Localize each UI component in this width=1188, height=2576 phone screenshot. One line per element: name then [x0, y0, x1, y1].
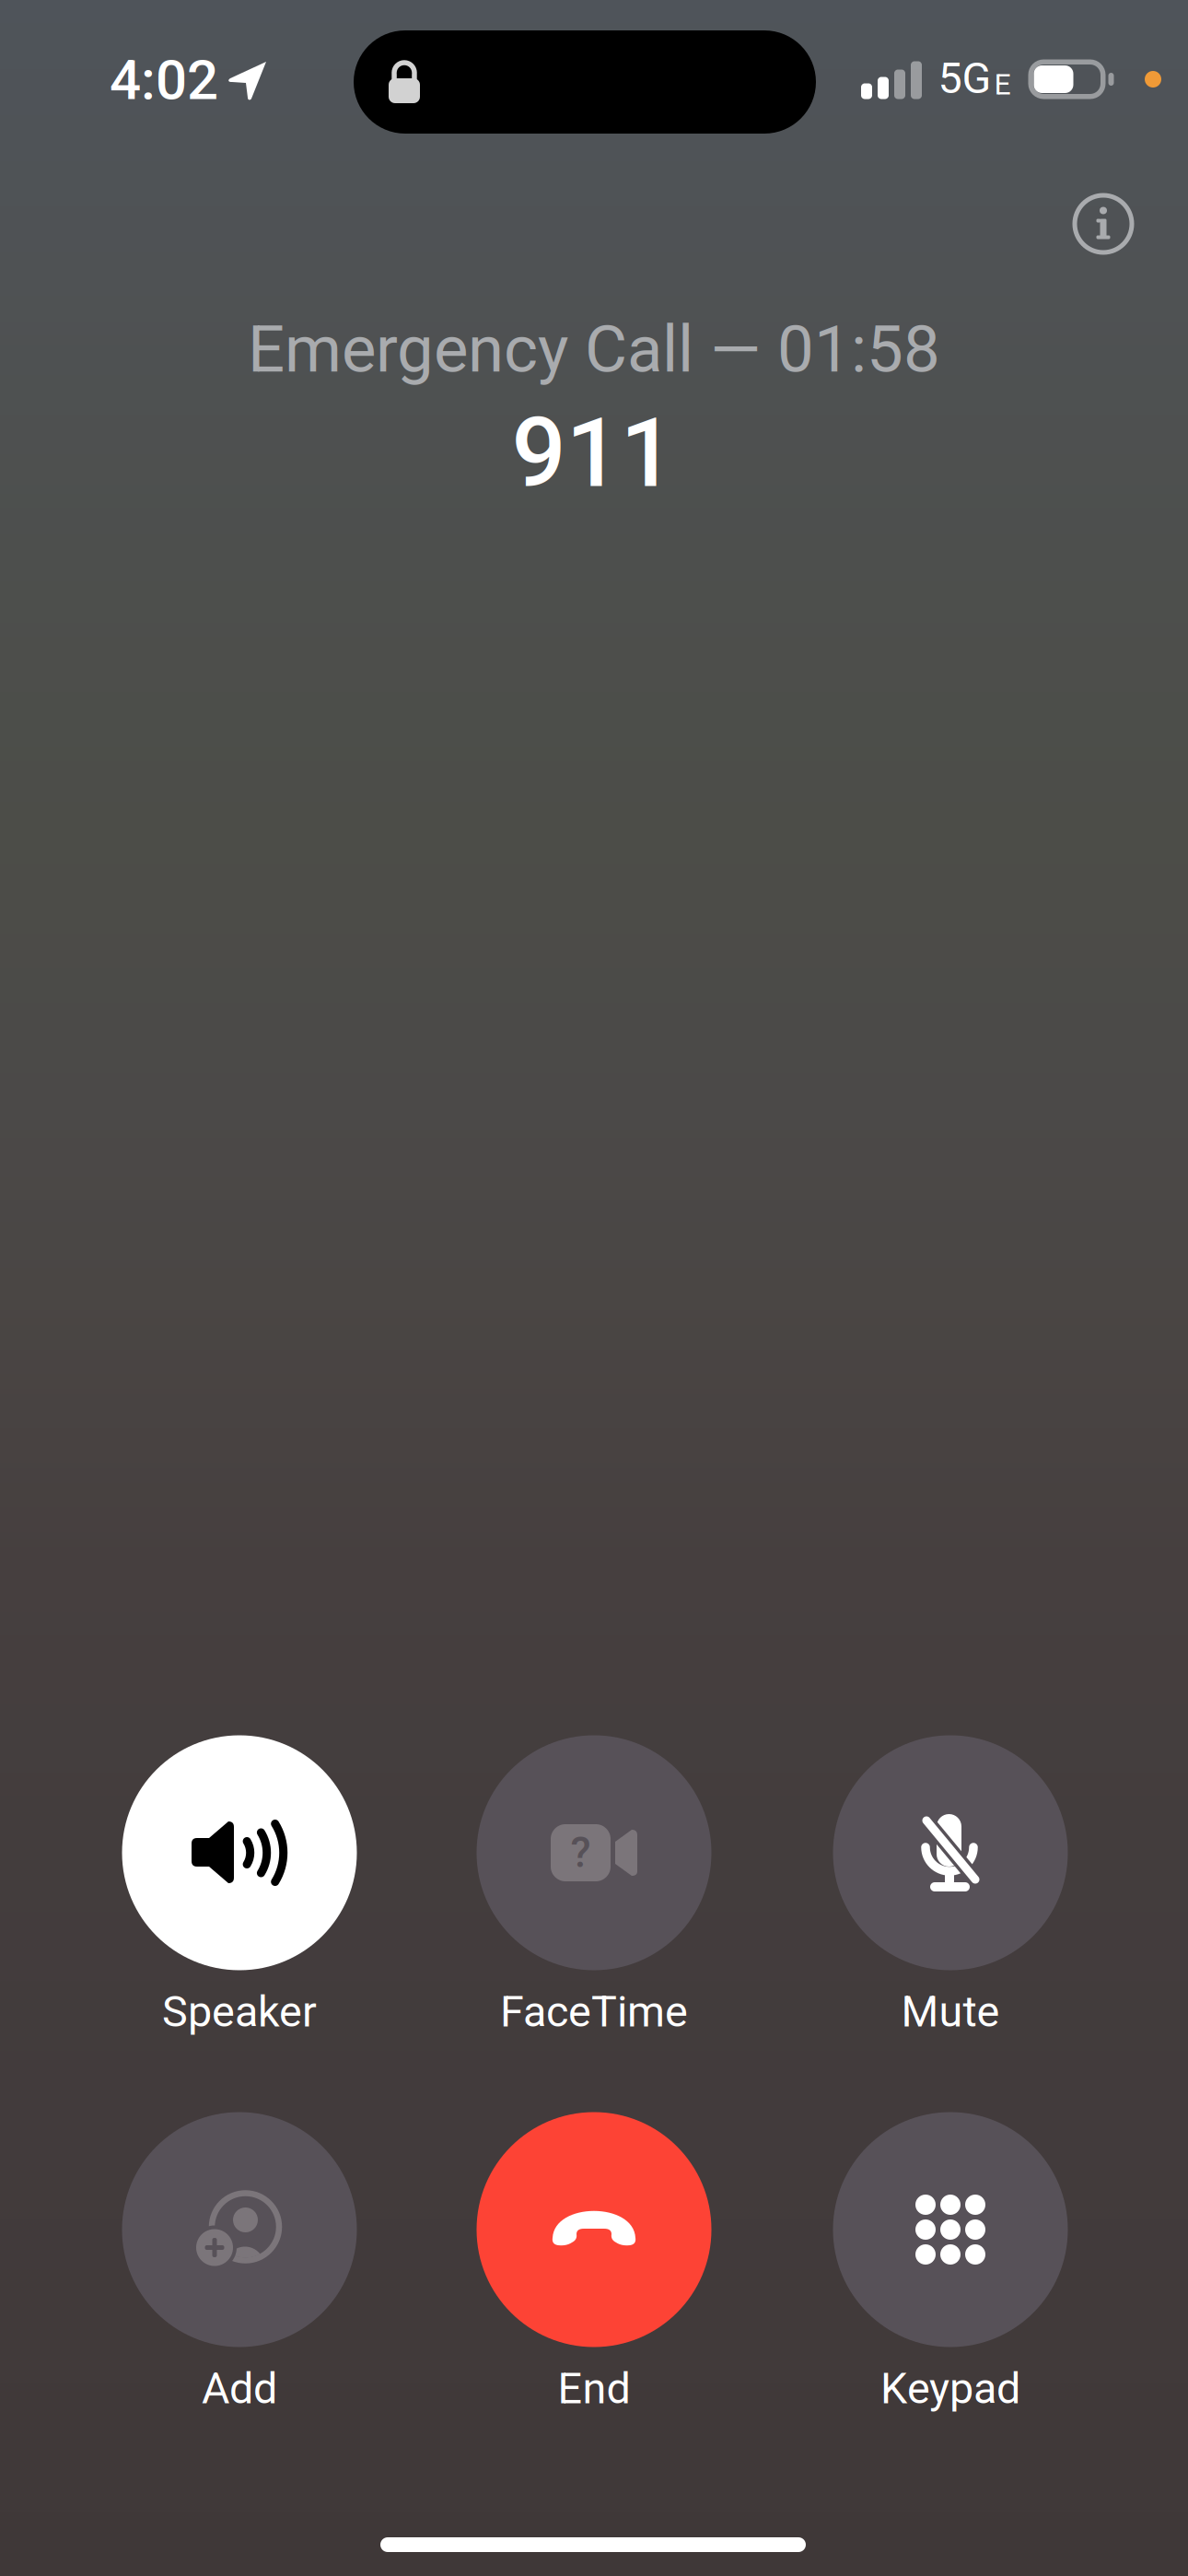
staticText: End [558, 2363, 630, 2414]
staticText: Keypad [880, 2363, 1020, 2414]
staticText: Emergency Call — 01:58 [248, 311, 940, 387]
staticText: Add [202, 2363, 277, 2414]
button[interactable]: Call information [1053, 173, 1154, 275]
button[interactable]: Mute [812, 1735, 1089, 2051]
staticText: ? [571, 1828, 591, 1877]
staticText: Mute [901, 1987, 1000, 2037]
staticText: Speaker [162, 1987, 317, 2037]
staticText: E [994, 67, 1011, 102]
button[interactable]: Speaker [101, 1735, 378, 2051]
button[interactable]: Keypad [812, 2112, 1089, 2428]
staticText: 4:02 [110, 48, 218, 112]
button[interactable]: Add [101, 2112, 378, 2428]
staticText: 5G [938, 53, 991, 104]
button[interactable]: End [456, 2112, 732, 2428]
button[interactable]: ? [456, 1735, 732, 2051]
staticText: FaceTime [500, 1987, 688, 2037]
staticText: 911 [512, 397, 675, 509]
